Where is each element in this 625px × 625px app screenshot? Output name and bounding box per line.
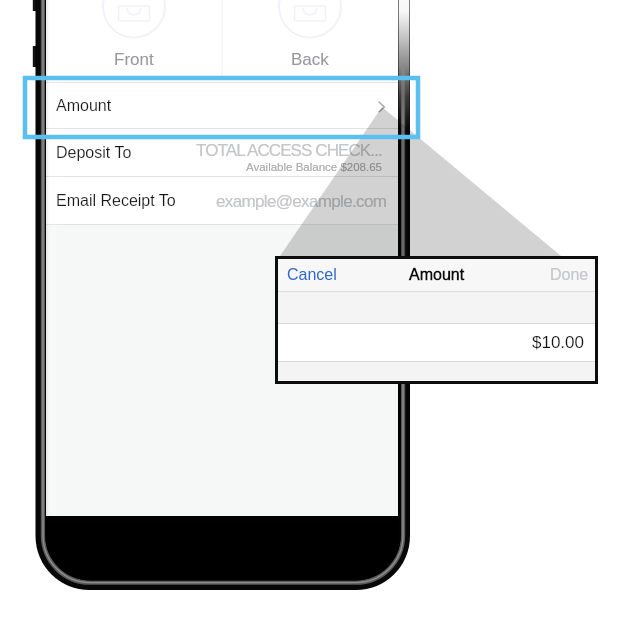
staticText: TOTAL ACCESS CHECK... [196,141,382,160]
button[interactable]: $10.00 [278,324,595,361]
button[interactable]: Deposit To [46,129,398,176]
staticText: Cancel [287,266,337,284]
button[interactable]: Cancel [287,266,337,284]
button[interactable]: Email Receipt To [46,177,398,224]
staticText: Front [114,50,154,69]
staticText: Deposit To [56,144,132,162]
staticText: Done [550,266,589,284]
button[interactable]: Amount [46,83,398,128]
staticText: Email Receipt To [56,192,176,210]
button[interactable]: Done [550,266,589,284]
staticText: example@example.com [216,192,387,211]
button[interactable]: Capture Front of check [46,0,222,82]
staticText: Amount [56,97,112,115]
button[interactable]: Capture Back of check [222,0,398,82]
staticText: Back [291,50,329,69]
other: Open amount [378,101,385,113]
staticText: $10.00 [532,333,584,352]
staticText: Amount [409,266,465,284]
staticText: Available Balance $208.65 [246,161,382,174]
